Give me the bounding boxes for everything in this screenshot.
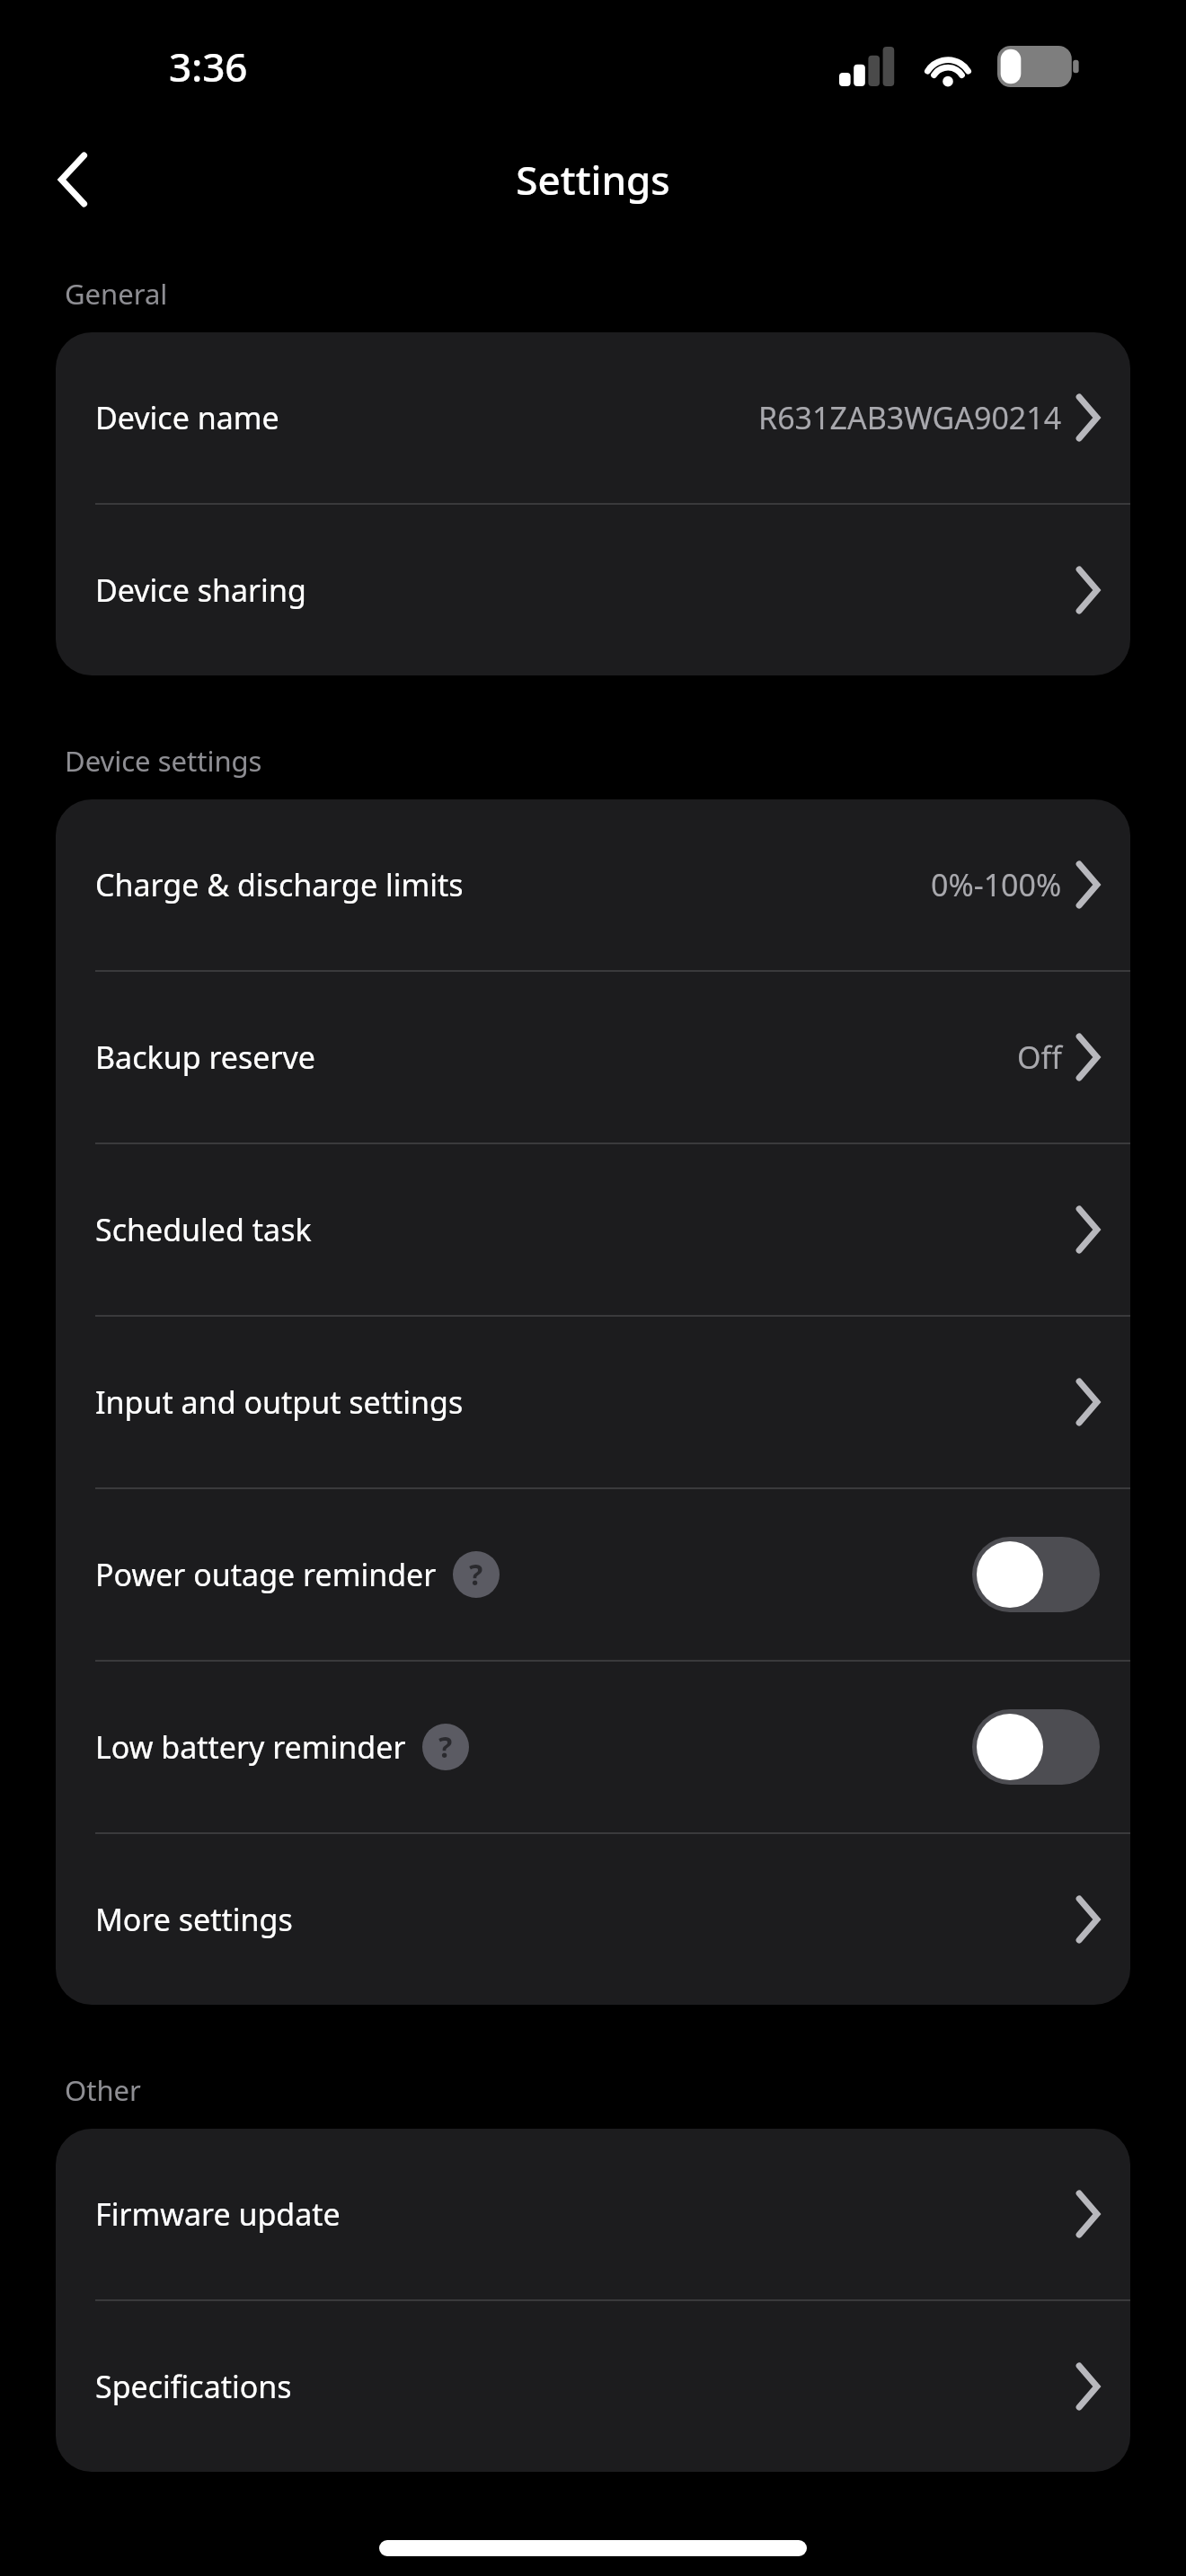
staticText: Firmware update [95, 2193, 341, 2235]
staticText: Device name [95, 397, 279, 438]
staticText: Scheduled task [95, 1209, 312, 1250]
button[interactable]: Scheduled task [56, 1144, 1130, 1315]
button[interactable]: Input and output settings [56, 1317, 1130, 1487]
button[interactable]: Backup reserve [56, 972, 1130, 1142]
button[interactable]: Device sharing [56, 505, 1130, 675]
button[interactable]: Back [32, 139, 113, 220]
staticText: Device settings [65, 742, 262, 780]
button[interactable]: Specifications [56, 2301, 1130, 2472]
staticText: ? [469, 1555, 483, 1594]
staticText: General [65, 275, 168, 313]
staticText: Input and output settings [95, 1381, 464, 1423]
staticText: R631ZAB3WGA90214 [758, 397, 1062, 438]
staticText: Backup reserve [95, 1037, 315, 1078]
button[interactable]: Toggle [972, 1709, 1100, 1785]
staticText: Specifications [95, 2366, 292, 2407]
staticText: Charge & discharge limits [95, 864, 464, 905]
button[interactable]: Help [422, 1724, 469, 1770]
button[interactable]: Low battery reminder [56, 1662, 1130, 1832]
button[interactable]: More settings [56, 1834, 1130, 2005]
staticText: Settings [0, 153, 1186, 207]
staticText: ? [438, 1727, 453, 1767]
staticText: Device sharing [95, 569, 306, 611]
button[interactable]: Help [453, 1551, 500, 1598]
staticText: Off [1017, 1037, 1062, 1078]
staticText: Power outage reminder [95, 1554, 437, 1595]
staticText: Other [65, 2071, 141, 2109]
button[interactable]: Firmware update [56, 2129, 1130, 2299]
button[interactable]: Charge & discharge limits [56, 799, 1130, 970]
staticText: More settings [95, 1899, 293, 1940]
button[interactable]: Power outage reminder [56, 1489, 1130, 1660]
staticText: 0%-100% [931, 864, 1062, 905]
staticText: 3:36 [169, 40, 248, 93]
button[interactable]: Toggle [972, 1537, 1100, 1612]
staticText: Low battery reminder [95, 1726, 406, 1768]
button[interactable]: Device name [56, 332, 1130, 503]
